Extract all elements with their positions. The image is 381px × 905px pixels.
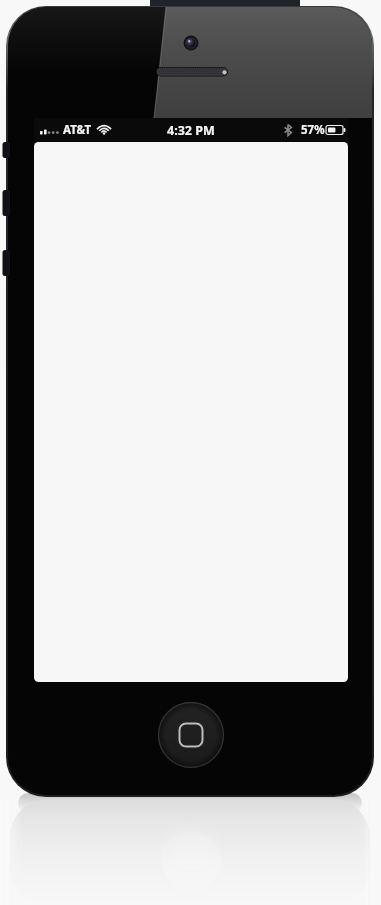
button[interactable]: iPhone device with blank screen bbox=[0, 0, 381, 905]
